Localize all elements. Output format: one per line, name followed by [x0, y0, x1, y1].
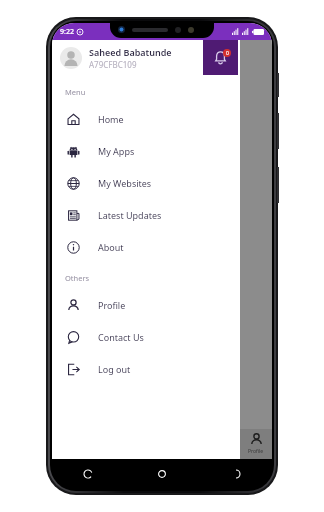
staticText: Home — [98, 113, 124, 125]
button[interactable]: My Websites — [52, 167, 238, 199]
button[interactable]: About — [52, 231, 238, 263]
staticText: Profile — [98, 299, 126, 311]
staticText: My Apps — [98, 145, 135, 157]
button[interactable]: Latest Updates — [52, 199, 238, 231]
staticText: A79CFBC109 — [89, 59, 137, 70]
button[interactable]: Notifications — [203, 40, 238, 75]
staticText: Menu — [65, 87, 86, 97]
staticText: 0 — [226, 50, 229, 57]
button[interactable]: Profile — [52, 289, 238, 321]
staticText: Log out — [98, 363, 131, 375]
staticText: 9:22 — [60, 27, 74, 37]
button[interactable]: Saheed Babatunde — [60, 40, 203, 75]
staticText: My Websites — [98, 177, 152, 189]
button[interactable]: Contact Us — [52, 321, 238, 353]
button[interactable]: Home — [52, 103, 238, 135]
staticText: About — [98, 241, 124, 253]
button[interactable]: Log out — [52, 353, 238, 385]
button[interactable]: Home — [152, 464, 172, 484]
button[interactable]: Recents — [78, 464, 98, 484]
button[interactable]: Back — [226, 464, 246, 484]
button[interactable]: My Apps — [52, 135, 238, 167]
staticText: Contact Us — [98, 331, 144, 343]
staticText: Latest Updates — [98, 209, 162, 221]
staticText: Profile — [248, 448, 264, 455]
staticText: Others — [65, 273, 90, 283]
staticText: Saheed Babatunde — [89, 46, 172, 58]
button[interactable]: Profile — [240, 429, 272, 459]
